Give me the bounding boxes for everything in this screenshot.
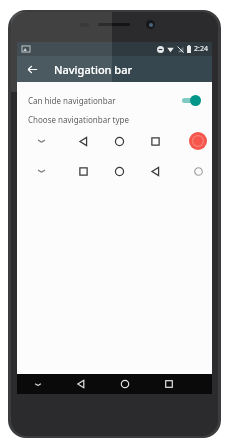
button[interactable]: Recents <box>147 374 191 394</box>
staticText: Choose navigationbar type <box>28 114 129 125</box>
button[interactable]: Can hide navigationbar <box>17 89 212 111</box>
button[interactable]: Selected <box>17 130 212 152</box>
staticText: 2:24 <box>194 44 208 54</box>
staticText: Can hide navigationbar <box>28 95 116 106</box>
staticText: Navigation bar <box>54 62 133 77</box>
button[interactable]: Back <box>22 59 42 79</box>
button[interactable]: Select <box>184 160 212 182</box>
button[interactable]: Selected <box>184 130 212 152</box>
button[interactable]: Select <box>17 160 212 182</box>
button[interactable]: Home <box>103 374 147 394</box>
button[interactable]: Back <box>59 374 103 394</box>
